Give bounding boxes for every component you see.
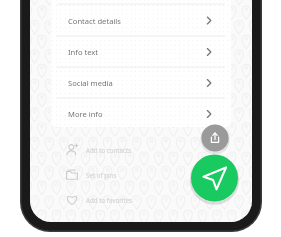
button[interactable]: Add to favorites xyxy=(60,189,190,211)
button[interactable]: Contact details xyxy=(51,4,231,36)
button[interactable]: More info xyxy=(51,98,231,127)
button[interactable]: Info text xyxy=(51,36,231,67)
button[interactable]: Set of pins xyxy=(60,164,190,186)
button[interactable]: Share xyxy=(201,124,229,152)
button[interactable]: Navigate xyxy=(190,154,239,203)
button[interactable]: Add to contacts xyxy=(60,139,190,161)
button[interactable]: Social media xyxy=(51,67,231,98)
